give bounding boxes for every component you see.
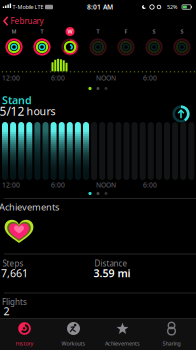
staticText: Achievements: [0, 201, 59, 213]
staticText: February: [10, 16, 43, 26]
staticText: 6:00: [51, 74, 65, 82]
staticText: W: [67, 28, 72, 35]
button[interactable]: W: [0, 0, 196, 350]
staticText: 3.59 mi: [93, 266, 130, 280]
staticText: T: [96, 28, 99, 35]
staticText: Flights: [2, 297, 27, 307]
button[interactable]: Achievements: [0, 0, 196, 350]
button[interactable]: T: [0, 0, 196, 350]
staticText: S: [152, 28, 155, 35]
staticText: T-Mobile LTE: [12, 3, 43, 11]
button[interactable]: Workouts: [0, 0, 196, 350]
staticText: 6:00: [143, 181, 157, 189]
button[interactable]: [0, 0, 196, 350]
staticText: 2: [3, 304, 9, 318]
staticText: NOON: [96, 181, 116, 189]
staticText: 12:00: [2, 181, 20, 189]
button[interactable]: T: [0, 0, 196, 350]
staticText: hours: [26, 104, 55, 118]
staticText: M: [11, 28, 16, 35]
staticText: T: [40, 28, 43, 35]
button[interactable]: S: [0, 0, 196, 350]
button[interactable]: M: [0, 0, 196, 350]
staticText: S: [180, 28, 183, 35]
staticText: NOON: [96, 74, 116, 82]
staticText: 8:01 AM: [87, 3, 113, 11]
staticText: 6:00: [143, 74, 157, 82]
staticText: 12:00: [2, 74, 20, 82]
staticText: 7,661: [1, 266, 28, 280]
button[interactable]: S: [0, 0, 196, 350]
staticText: Distance: [94, 258, 127, 269]
staticText: 5/12: [0, 103, 24, 119]
button[interactable]: History: [0, 0, 196, 350]
staticText: 6:00: [51, 181, 65, 189]
staticText: Steps: [2, 258, 23, 269]
staticText: Sharing: [162, 340, 180, 347]
staticText: Stand: [2, 93, 32, 107]
button[interactable]: F: [0, 0, 196, 350]
staticText: Workouts: [61, 340, 85, 347]
staticText: History: [15, 340, 33, 347]
button[interactable]: February: [0, 0, 196, 350]
staticText: F: [124, 28, 127, 35]
staticText: Achievements: [105, 340, 140, 347]
button[interactable]: Sharing: [0, 0, 196, 350]
staticText: 52%: [167, 3, 177, 11]
